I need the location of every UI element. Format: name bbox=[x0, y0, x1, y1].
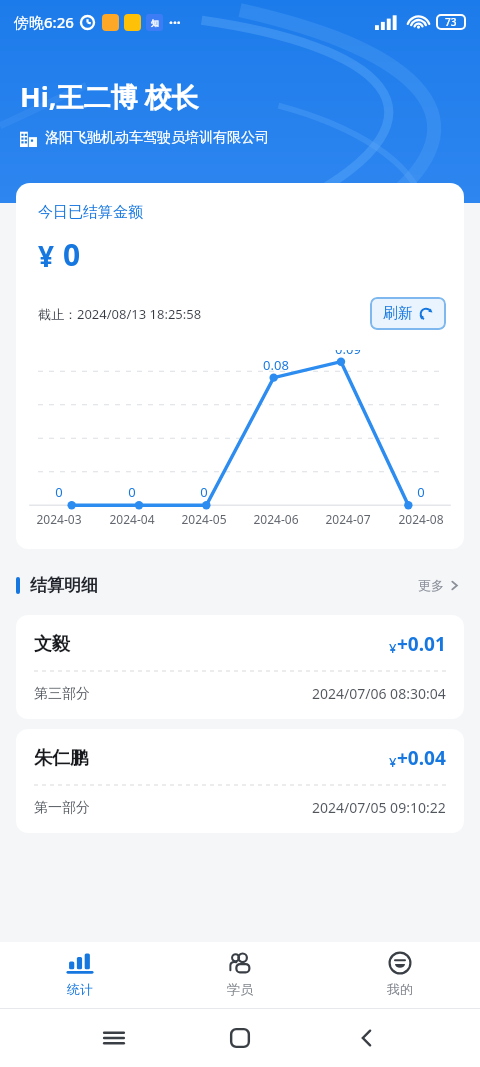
button[interactable]: 学员 bbox=[160, 942, 320, 1008]
staticText: 洛阳飞驰机动车驾驶员培训有限公司 bbox=[45, 129, 269, 147]
staticText: 2024/07/05 09:10:22 bbox=[312, 798, 446, 817]
button[interactable]: 刷新 bbox=[370, 297, 446, 330]
staticText: 统计 bbox=[67, 981, 93, 997]
button[interactable]: 文毅 bbox=[16, 615, 464, 719]
staticText: 2024-03 bbox=[33, 511, 85, 527]
staticText: 文毅 bbox=[34, 633, 70, 656]
staticText: 2024/07/06 08:30:04 bbox=[312, 684, 446, 703]
staticText: 第一部分 bbox=[34, 799, 90, 817]
staticText: 知 bbox=[151, 18, 159, 28]
staticText: 结算明细 bbox=[30, 575, 98, 596]
staticText: 我的 bbox=[387, 981, 413, 997]
staticText: 0 bbox=[403, 483, 439, 501]
staticText: 0.08 bbox=[258, 356, 294, 374]
button[interactable]: 朱仁鹏 bbox=[16, 729, 464, 833]
staticText: 2024-06 bbox=[250, 511, 302, 527]
staticText: +0.01 bbox=[397, 631, 446, 657]
staticText: ··· bbox=[169, 13, 181, 32]
staticText: 0 bbox=[63, 234, 81, 275]
staticText: 朱仁鹏 bbox=[34, 747, 88, 770]
staticText: 2024-08 bbox=[395, 511, 447, 527]
staticText: 更多 bbox=[418, 577, 444, 593]
staticText: 第三部分 bbox=[34, 685, 90, 703]
button[interactable]: 更多 bbox=[414, 573, 464, 597]
staticText: 0.09 bbox=[330, 340, 366, 358]
staticText: 0 bbox=[41, 483, 77, 501]
staticText: 2024-05 bbox=[178, 511, 230, 527]
staticText: 0 bbox=[114, 483, 150, 501]
staticText: 0 bbox=[186, 483, 222, 501]
staticText: 刷新 bbox=[383, 304, 413, 323]
staticText: 73 bbox=[445, 15, 457, 29]
staticText: 学员 bbox=[227, 981, 253, 997]
staticText: 2024-07 bbox=[322, 511, 374, 527]
other: Recent apps bbox=[101, 1025, 127, 1051]
staticText: 今日已结算金额 bbox=[38, 203, 143, 222]
other: Home bbox=[227, 1025, 253, 1051]
other: Back bbox=[354, 1025, 380, 1051]
button[interactable]: 统计 bbox=[0, 942, 160, 1008]
button[interactable]: 我的 bbox=[320, 942, 480, 1008]
staticText: 傍晚6:26 bbox=[14, 12, 74, 32]
staticText: ¥ bbox=[38, 237, 55, 275]
staticText: Hi,王二博 校长 bbox=[20, 78, 199, 115]
button[interactable]: 最近五天 bbox=[16, 252, 104, 287]
staticText: 2024-04 bbox=[106, 511, 158, 527]
staticText: 截止：2024/08/13 18:25:58 bbox=[38, 305, 202, 323]
staticText: ¥ bbox=[389, 639, 397, 657]
staticText: 最近五天 bbox=[30, 260, 90, 279]
staticText: ¥ bbox=[389, 753, 397, 771]
staticText: +0.04 bbox=[397, 745, 446, 771]
